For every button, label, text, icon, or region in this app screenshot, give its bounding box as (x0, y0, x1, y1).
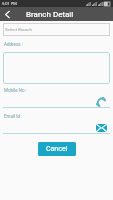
staticText: Email Id : (4, 114, 23, 119)
staticText: Mobile No : (4, 88, 27, 93)
staticText: Select Branch (5, 27, 32, 32)
button[interactable]: Back (0, 7, 14, 21)
button[interactable]: Call (94, 95, 106, 107)
staticText: Branch Detail (26, 10, 74, 19)
button[interactable]: Email (95, 123, 108, 133)
button[interactable]: Select Branch (3, 23, 110, 36)
staticText: Address : (4, 42, 23, 47)
staticText: Cancel (46, 145, 68, 153)
button[interactable] (3, 52, 110, 84)
button[interactable]: Cancel (38, 142, 76, 156)
staticText: 5:01 PM (2, 1, 17, 6)
